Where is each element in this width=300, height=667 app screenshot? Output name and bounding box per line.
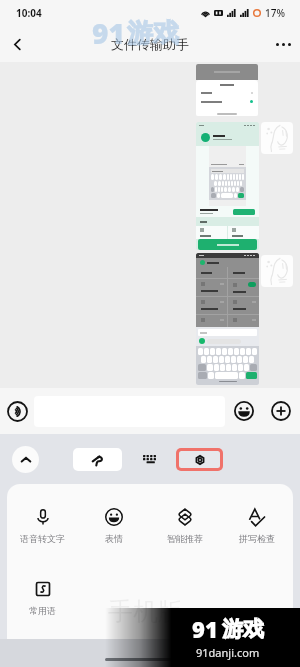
button[interactable]: Emoji: [225, 388, 262, 434]
staticText: 游戏: [127, 17, 179, 50]
staticText: 常用语: [29, 605, 56, 616]
staticText: 拼写检查: [239, 533, 275, 544]
staticText: 10:04: [16, 6, 42, 20]
button[interactable]: Add attachment: [262, 388, 300, 434]
button[interactable]: Avatar: [261, 122, 293, 154]
button[interactable]: Keyboard: [122, 448, 176, 471]
button[interactable]: 语音转文字: [7, 508, 78, 544]
button[interactable]: More options: [266, 27, 300, 61]
button[interactable]: Settings: [179, 451, 220, 468]
button[interactable]: 表情: [78, 508, 149, 544]
staticText: 手机版: [108, 596, 183, 627]
button[interactable]: Handwriting: [73, 448, 122, 471]
button[interactable]: 智能推荐: [149, 508, 221, 544]
staticText: 17%: [265, 6, 285, 20]
staticText: 文件传输助手: [111, 36, 189, 52]
staticText: 语音转文字: [20, 533, 65, 544]
staticText: 91: [192, 614, 218, 644]
button[interactable]: 常用语: [7, 580, 78, 616]
staticText: 91danji.com: [196, 645, 260, 660]
button[interactable]: Voice input: [0, 388, 34, 434]
staticText: 智能推荐: [167, 533, 203, 544]
staticText: 91: [92, 14, 125, 52]
staticText: 游戏: [222, 616, 264, 642]
button[interactable]: Back: [0, 27, 34, 61]
button[interactable]: 拼写检查: [221, 508, 293, 544]
button[interactable]: Avatar: [261, 255, 293, 287]
button[interactable]: Collapse panel: [12, 446, 39, 473]
staticText: 表情: [105, 533, 123, 544]
